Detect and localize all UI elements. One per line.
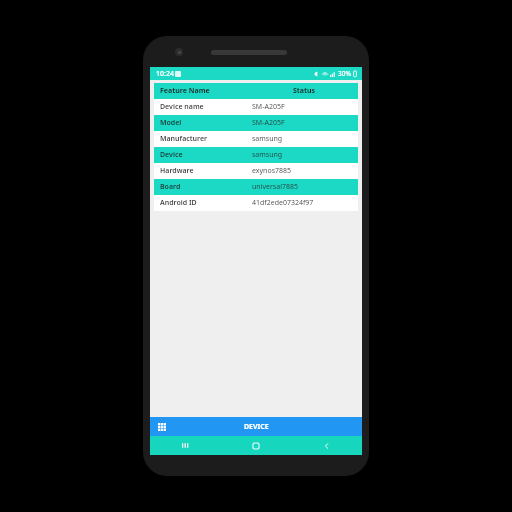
button[interactable]: Device name [154,99,358,115]
button[interactable]: Home [220,436,291,455]
button[interactable]: Menu [157,422,167,432]
staticText: Status [250,86,358,96]
staticText: 10:24 [156,69,174,79]
staticText: SM-A205F [252,118,358,128]
button[interactable]: Menu [150,417,362,436]
staticText: 41df2ede07324f97 [252,198,358,208]
staticText: universal7885 [252,182,358,192]
button[interactable]: Model [154,115,358,131]
button[interactable]: Board [154,179,358,195]
staticText: Device [160,150,250,160]
button[interactable]: Hardware [154,163,358,179]
staticText: Android ID [160,198,250,208]
staticText: Hardware [160,166,250,176]
staticText: SM-A205F [252,102,358,112]
button[interactable]: Device [154,147,358,163]
staticText: Board [160,182,250,192]
staticText: exynos7885 [252,166,358,176]
staticText: 30% [338,69,351,78]
button[interactable]: Back [291,436,362,455]
button[interactable]: Android ID [154,195,358,211]
staticText: DEVICE [244,422,269,432]
staticText: Model [160,118,250,128]
staticText: Device name [160,102,250,112]
staticText: Manufacturer [160,134,250,144]
staticText: samsung [252,134,358,144]
staticText: samsung [252,150,358,160]
button[interactable]: Recents [150,436,220,455]
staticText: Feature Name [160,86,250,96]
button[interactable]: Manufacturer [154,131,358,147]
